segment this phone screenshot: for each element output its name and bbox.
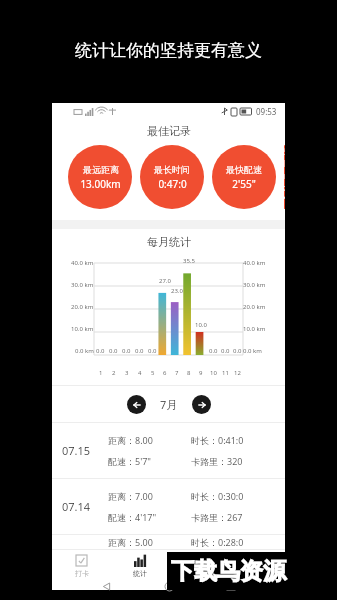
staticText: 最远距离 — [83, 164, 119, 175]
staticText: 卡路里：267 — [191, 511, 275, 523]
staticText: 打卡 — [75, 569, 89, 578]
staticText: 最佳记录 — [147, 124, 191, 138]
staticText: 距离：5.00 — [108, 536, 191, 548]
staticText: 统计 — [133, 569, 147, 578]
staticText: 我的 — [249, 569, 263, 578]
staticText: 11 — [222, 369, 229, 377]
staticText: 07.14 — [62, 499, 108, 514]
button[interactable]: 5km最快 — [284, 145, 285, 209]
staticText: 4' — [284, 207, 285, 209]
staticText: 卡路里：320 — [191, 455, 275, 467]
button[interactable]: 最长时间 — [140, 145, 204, 209]
staticText: 7月 — [160, 397, 178, 412]
staticText: 最快配速 — [226, 164, 262, 175]
staticText: 0.0 — [109, 347, 118, 355]
staticText: 0.0 km — [75, 347, 94, 355]
staticText: 9 — [199, 369, 203, 377]
button[interactable]: 最远距离 — [68, 145, 132, 209]
staticText: 5km最快 — [284, 145, 285, 205]
button[interactable]: 距离：5.00 — [52, 535, 285, 549]
button[interactable]: 07.15 — [52, 423, 285, 478]
button[interactable]: 我的 — [227, 549, 285, 583]
staticText: 10.0 — [195, 321, 207, 329]
button[interactable]: 07.14 — [52, 479, 285, 534]
staticText: 最长时间 — [154, 164, 190, 175]
staticText: 0.0 — [221, 347, 230, 355]
staticText: 4 — [138, 369, 142, 377]
staticText: 0.0 — [209, 347, 218, 355]
staticText: 40.0 km — [243, 259, 266, 267]
staticText: 7 — [175, 369, 179, 377]
staticText: 配速：5'7" — [108, 455, 191, 467]
button[interactable]: Next month — [192, 395, 211, 414]
staticText: 09:53 — [256, 106, 277, 117]
staticText: 每月统计 — [147, 235, 191, 249]
staticText: 8 — [187, 369, 191, 377]
staticText: 20.0 km — [243, 303, 266, 311]
staticText: 23.0 — [171, 287, 183, 295]
staticText: 3 — [125, 369, 129, 377]
staticText: 配速：4'17" — [108, 511, 191, 523]
staticText: 0.0 km — [243, 347, 262, 355]
staticText: 0.0 — [148, 347, 157, 355]
button[interactable]: 计划 — [169, 549, 227, 583]
staticText: 0.0 — [135, 347, 144, 355]
button[interactable]: Home — [160, 583, 178, 590]
button[interactable]: 最快配速 — [212, 145, 276, 209]
staticText: 计划 — [191, 569, 205, 578]
staticText: 时长：0:41:0 — [191, 434, 275, 446]
button[interactable]: 打卡 — [52, 549, 111, 583]
staticText: 距离：8.00 — [108, 434, 191, 446]
staticText: 20.0 km — [71, 303, 94, 311]
staticText: 距离：7.00 — [108, 490, 191, 502]
staticText: 30.0 km — [243, 281, 266, 289]
staticText: 27.0 — [159, 277, 171, 285]
staticText: 1 — [99, 369, 103, 377]
button[interactable]: Previous month — [127, 395, 146, 414]
staticText: 6 — [163, 369, 167, 377]
staticText: 0.0 — [96, 347, 105, 355]
staticText: 35.5 — [183, 257, 195, 263]
button[interactable]: Back — [97, 583, 115, 590]
staticText: 统计让你的坚持更有意义 — [75, 40, 262, 61]
staticText: 时长：0:28:0 — [191, 536, 275, 548]
staticText: 07.15 — [62, 443, 108, 458]
staticText: 12 — [234, 369, 241, 377]
button[interactable]: 统计 — [111, 549, 169, 583]
staticText: 2 — [112, 369, 116, 377]
staticText: 2'55" — [232, 177, 256, 191]
staticText: 13.00km — [80, 177, 121, 191]
staticText: 40.0 km — [71, 259, 94, 267]
staticText: 10.0 km — [243, 325, 266, 333]
staticText: 5 — [151, 369, 155, 377]
staticText: 时长：0:30:0 — [191, 490, 275, 502]
staticText: 30.0 km — [71, 281, 94, 289]
staticText: 0.0 — [233, 347, 242, 355]
staticText: 0.0 — [122, 347, 131, 355]
staticText: 下载鸟资源 — [171, 557, 286, 586]
staticText: 10.0 km — [71, 325, 94, 333]
staticText: 0:47:0 — [158, 177, 187, 191]
staticText: 10 — [210, 369, 217, 377]
